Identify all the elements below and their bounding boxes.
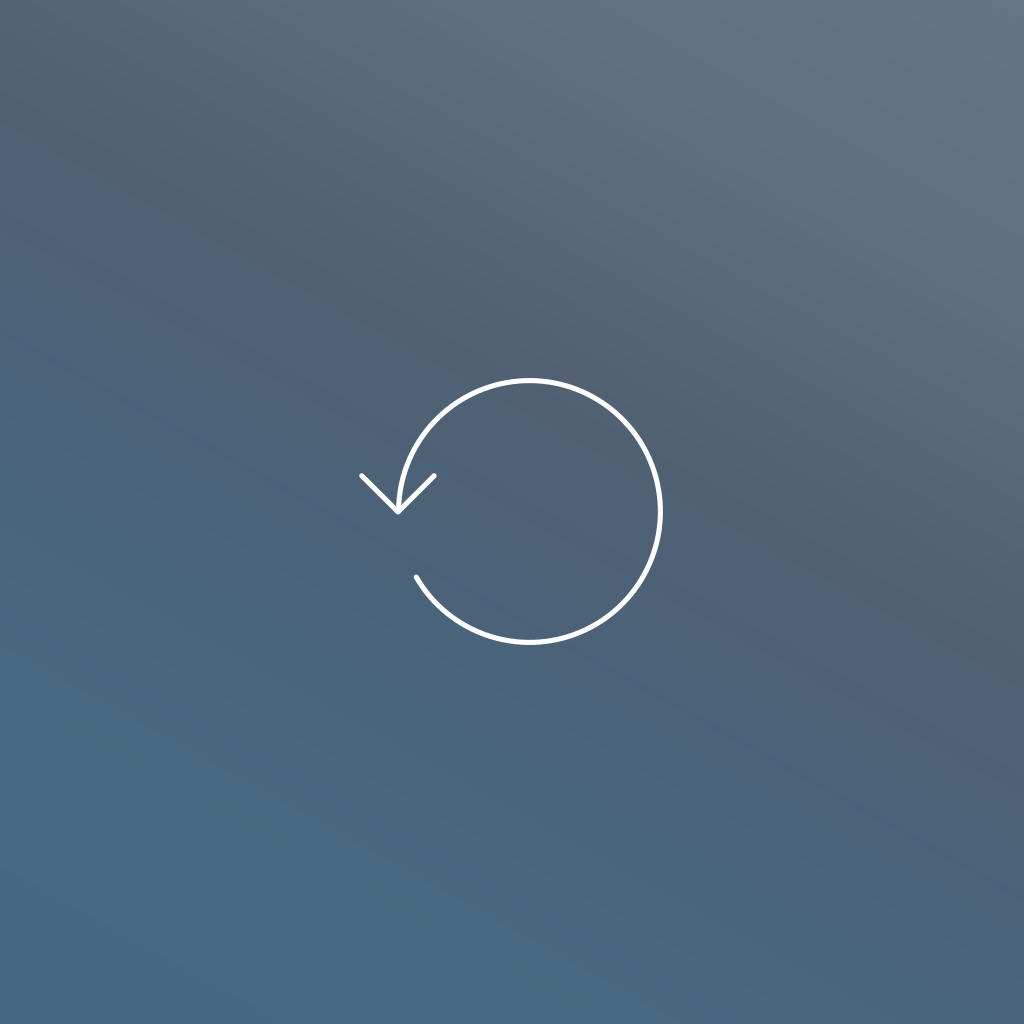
button[interactable]: Refresh <box>0 0 1024 1024</box>
